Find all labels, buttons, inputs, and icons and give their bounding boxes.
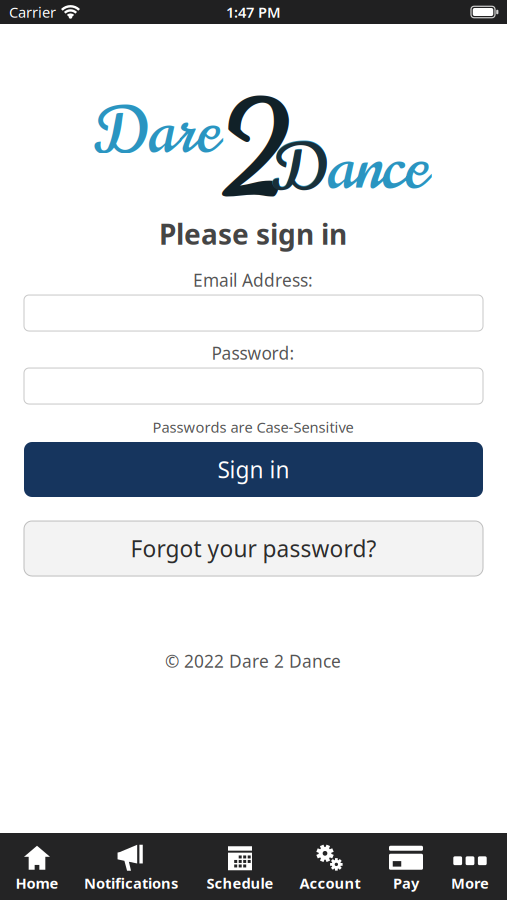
staticText: Home <box>15 873 58 893</box>
staticText: Schedule <box>206 873 273 893</box>
staticText: 1:47 PM <box>226 2 281 22</box>
staticText: Password: <box>211 341 294 364</box>
staticText: Please sign in <box>159 215 347 253</box>
staticText: © 2022 Dare 2 Dance <box>165 649 341 672</box>
button[interactable]: Sign in <box>24 442 483 497</box>
staticText: Forgot your password? <box>130 533 376 563</box>
button[interactable]: Account <box>299 845 360 893</box>
staticText: Carrier <box>9 2 56 22</box>
staticText: Sign in <box>217 454 289 484</box>
button[interactable]: Notifications <box>84 845 178 893</box>
staticText: Account <box>299 873 360 893</box>
staticText: 2 <box>221 58 296 246</box>
staticText: Dance <box>274 122 428 212</box>
staticText: Dare <box>96 87 220 176</box>
button[interactable]: Schedule <box>206 845 273 893</box>
staticText: Email Address: <box>193 268 313 291</box>
button[interactable]: Pay <box>389 845 423 893</box>
staticText: Notifications <box>84 873 178 893</box>
staticText: Pay <box>393 873 419 893</box>
button[interactable]: More <box>451 845 489 893</box>
staticText: Passwords are Case-Sensitive <box>152 417 353 437</box>
staticText: D <box>274 123 328 213</box>
button[interactable]: Home <box>15 845 58 893</box>
staticText: More <box>451 873 489 893</box>
button[interactable]: Forgot your password? <box>24 521 483 576</box>
